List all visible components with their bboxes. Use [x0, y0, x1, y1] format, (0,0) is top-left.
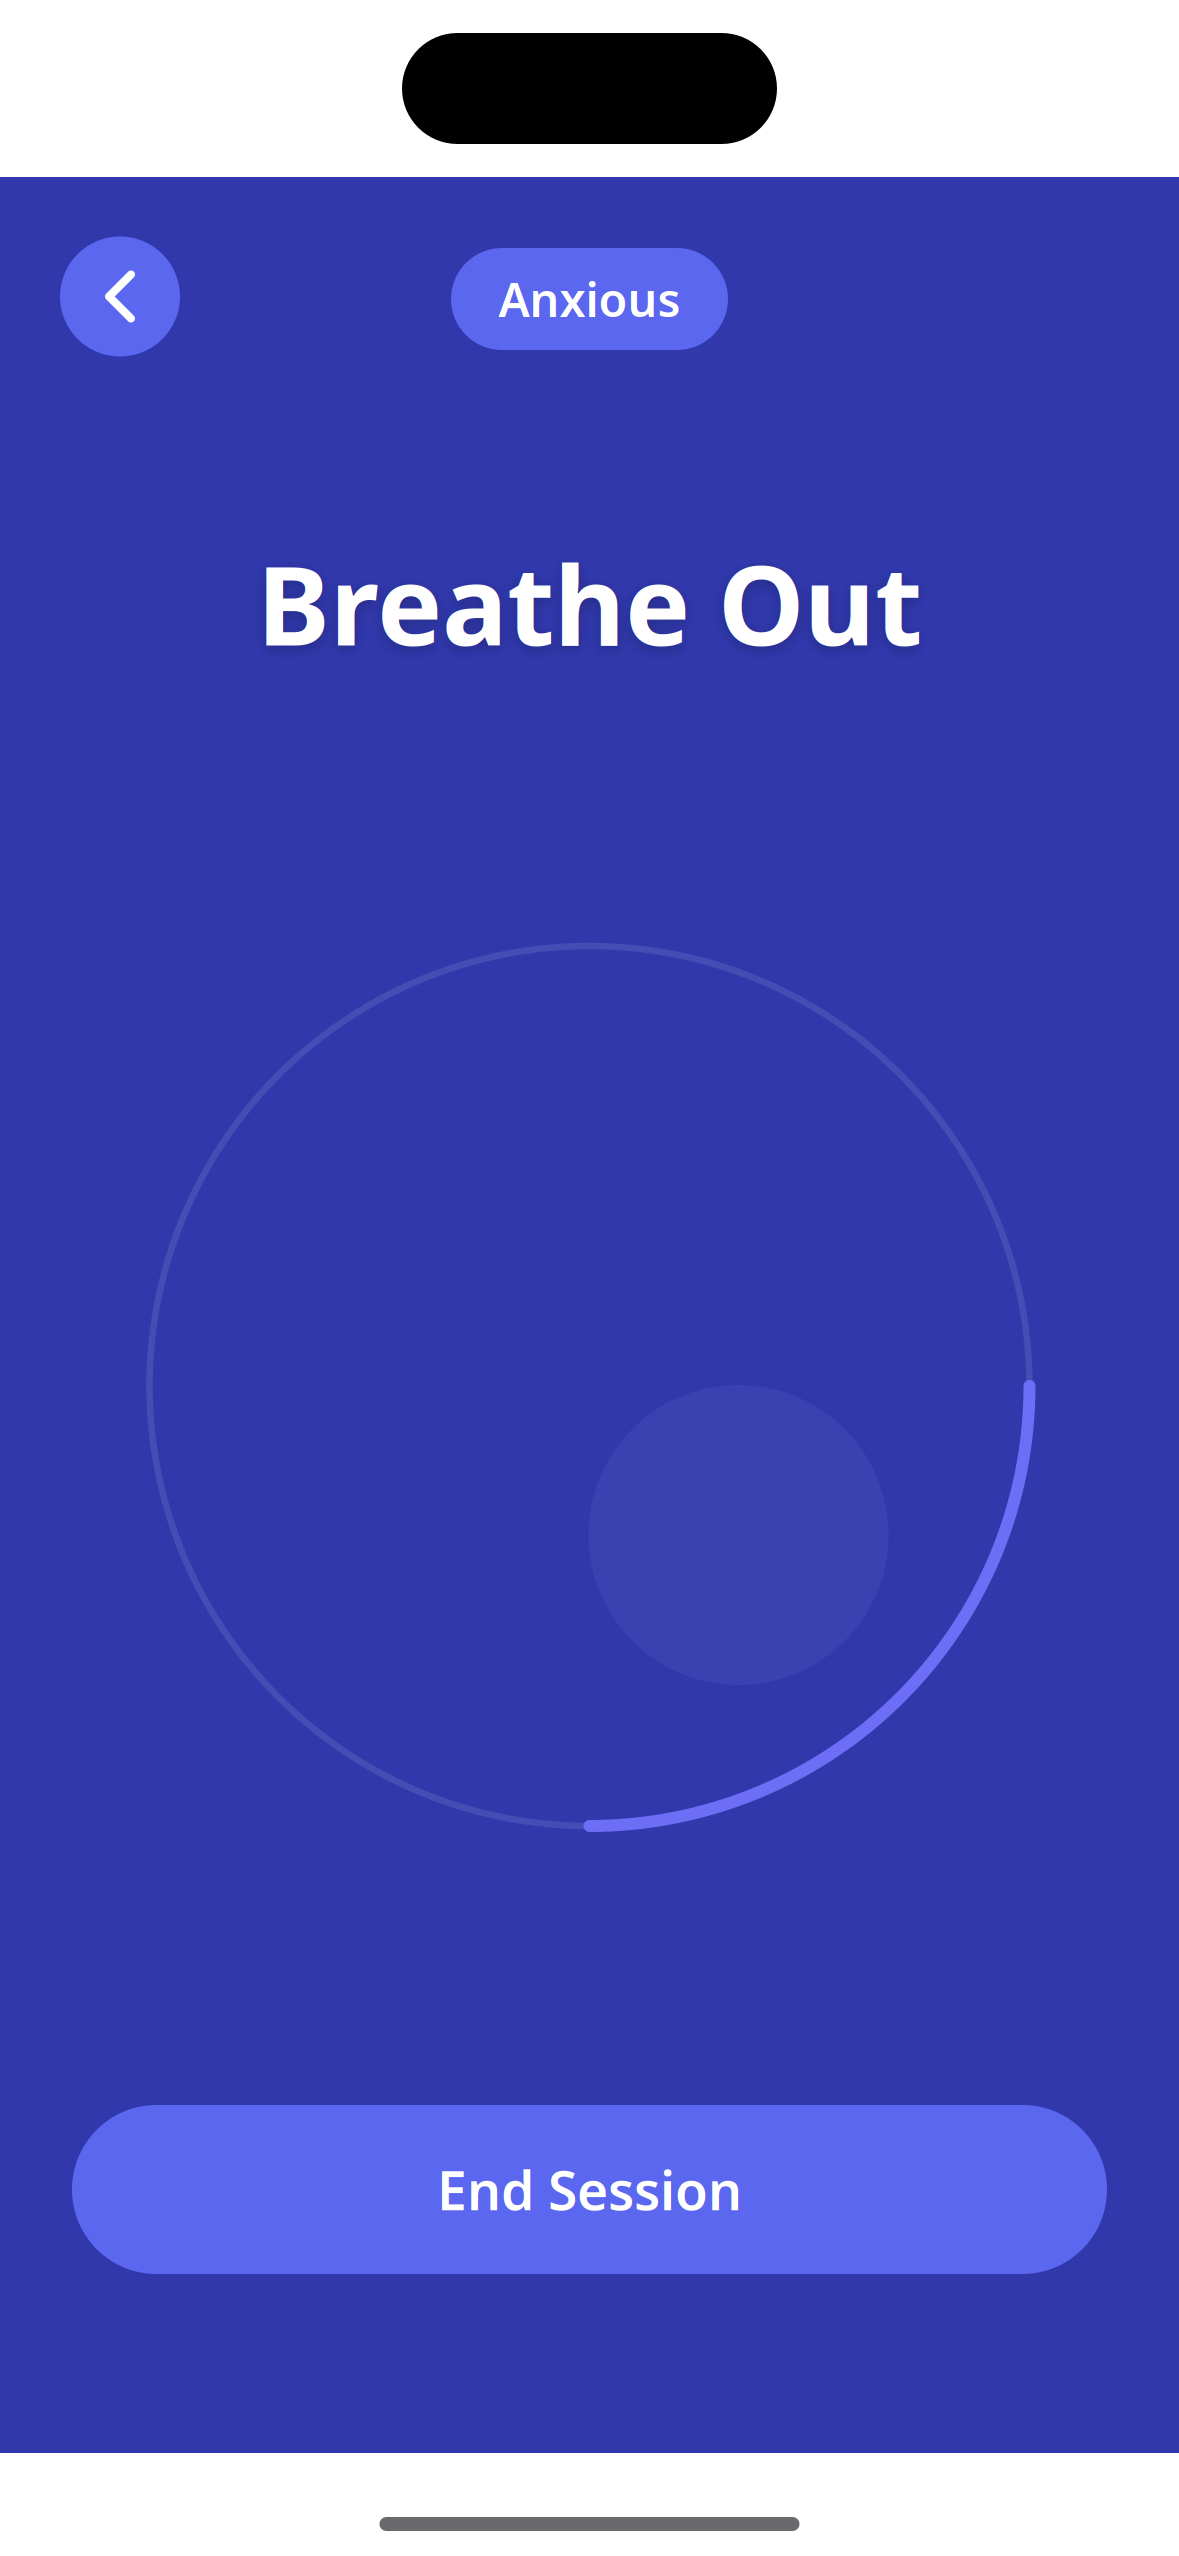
button[interactable]: Back	[60, 236, 180, 356]
staticText: Anxious	[498, 268, 680, 330]
button[interactable]: End Session	[72, 2105, 1107, 2274]
staticText: Breathe Out	[257, 530, 922, 676]
staticText: End Session	[437, 2154, 742, 2225]
button[interactable]: Anxious	[451, 248, 728, 350]
